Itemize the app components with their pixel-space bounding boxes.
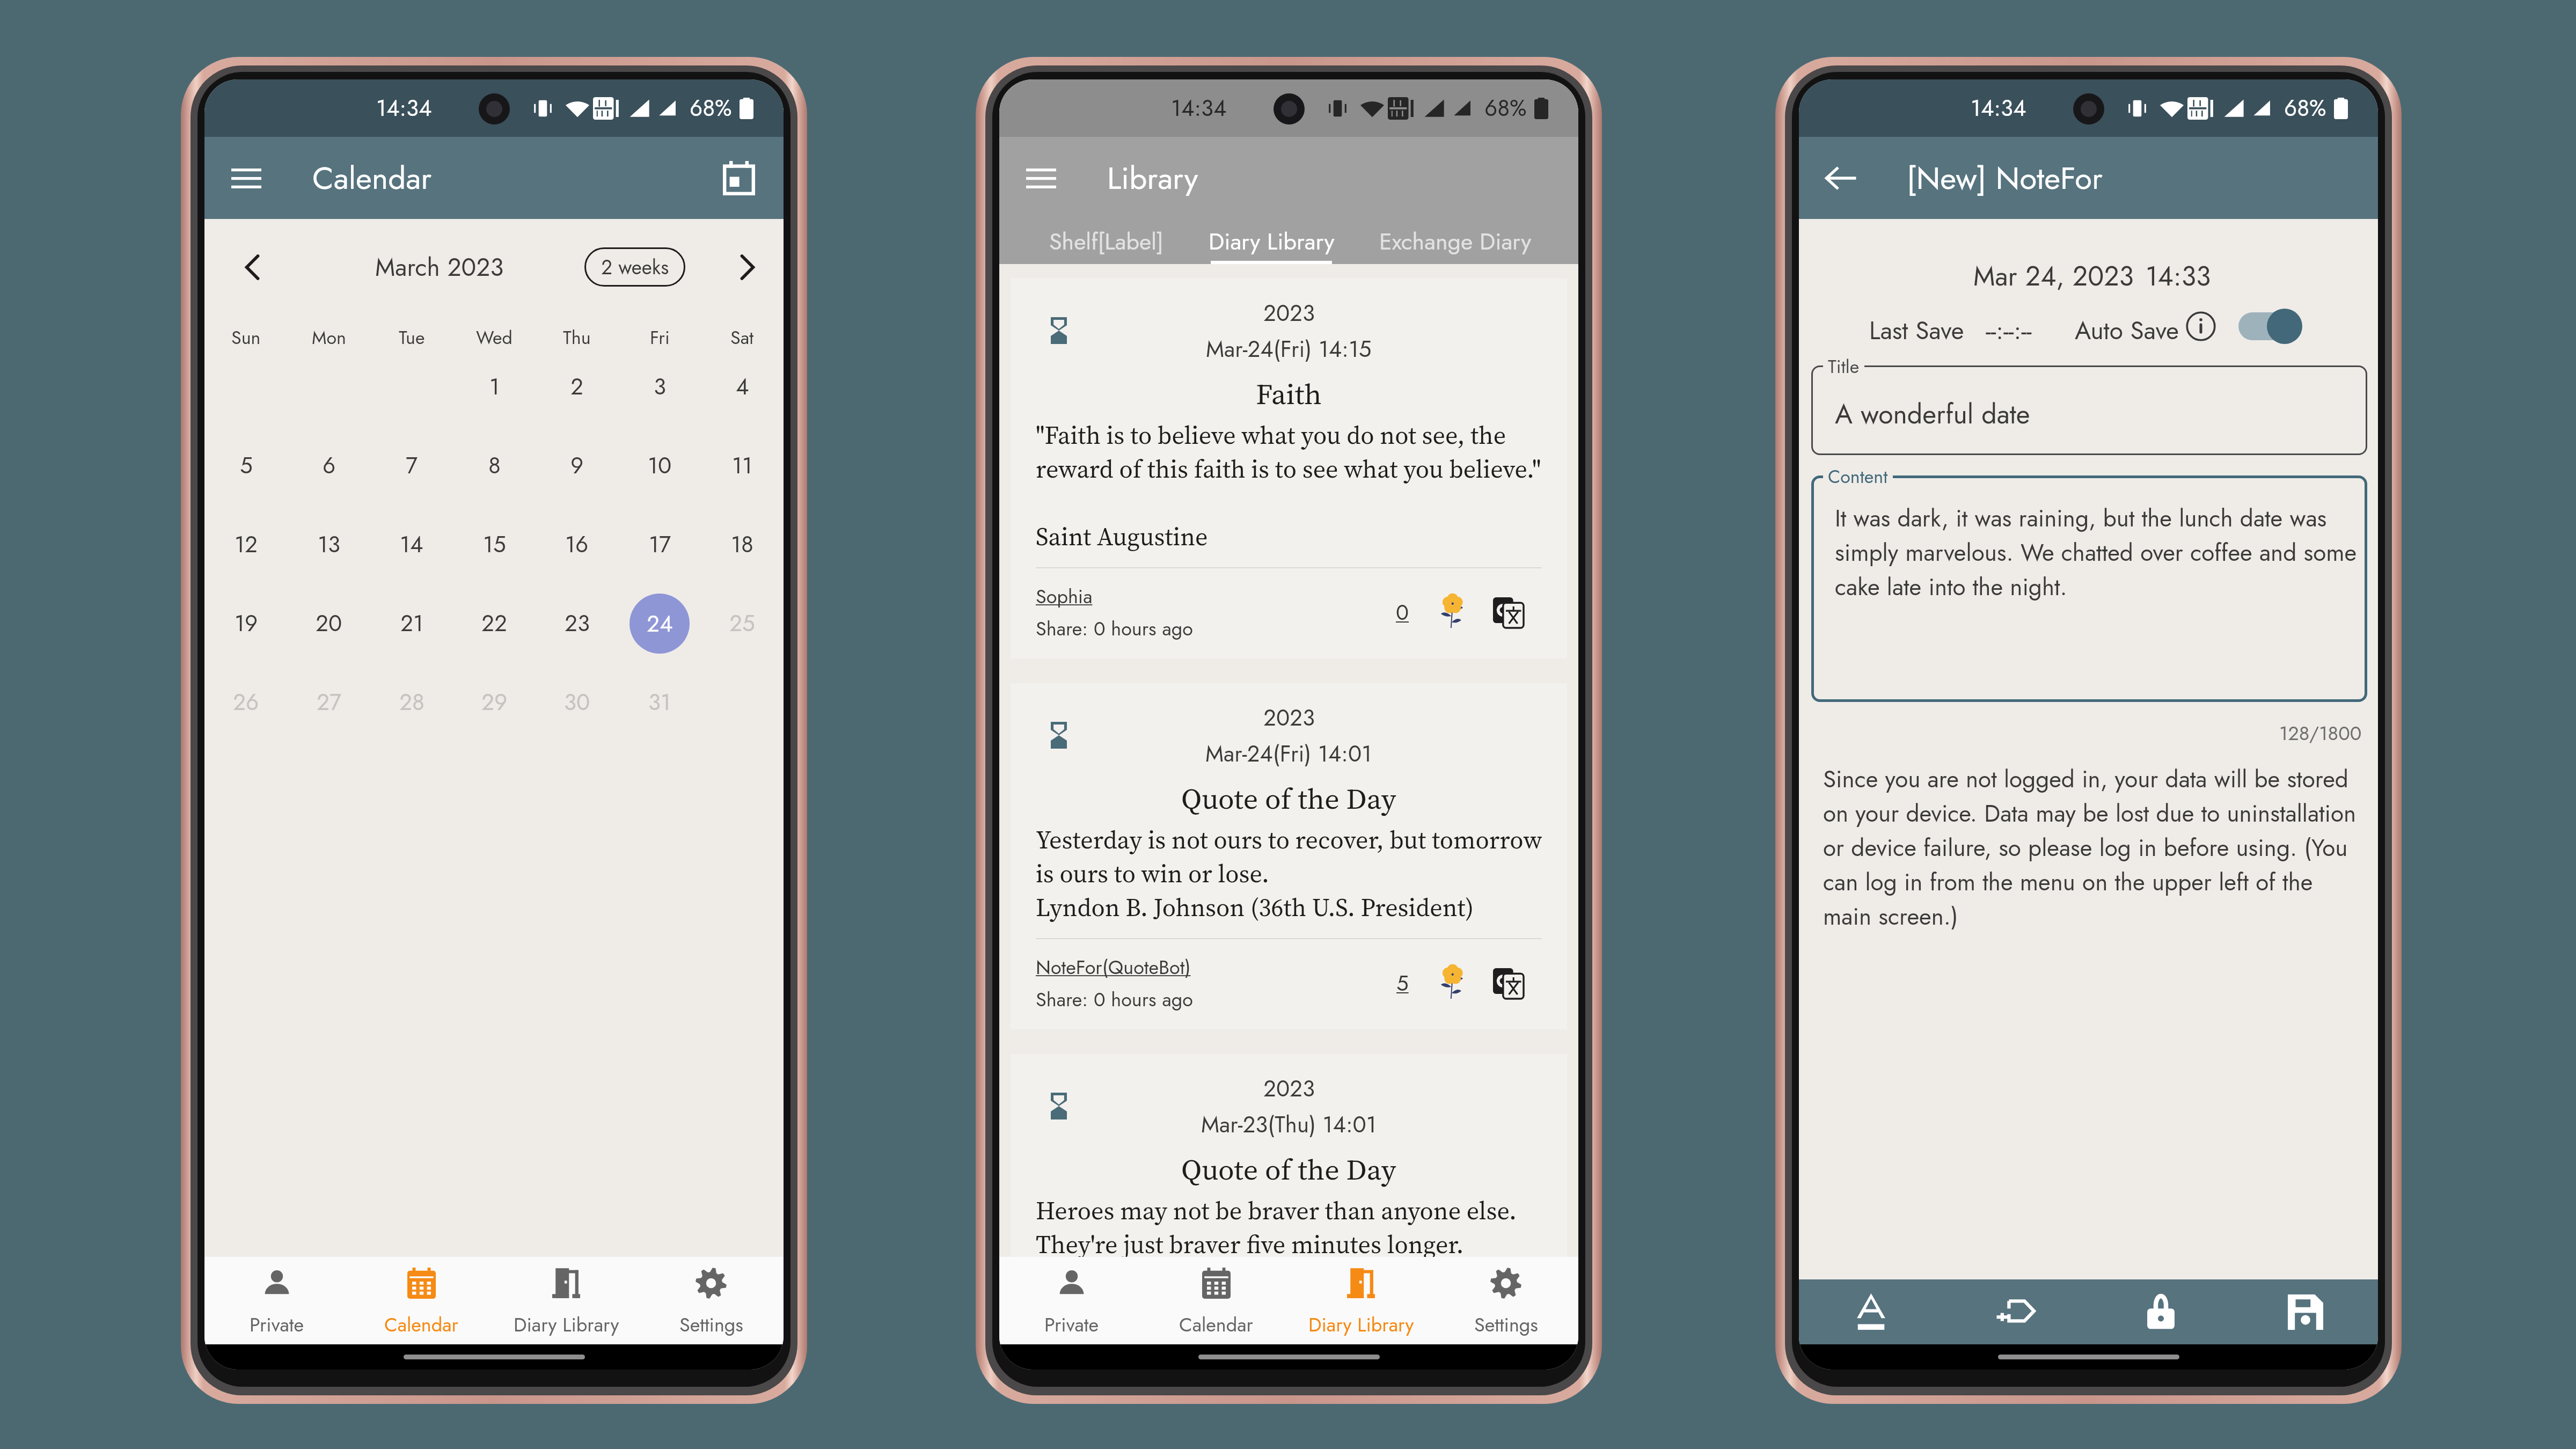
button[interactable]: 23	[536, 584, 618, 663]
staticText: Mar-24(Fri) 14:01	[1205, 737, 1372, 770]
button[interactable]: Menu	[219, 151, 273, 205]
button[interactable]: 10	[618, 426, 701, 505]
button[interactable]: 16	[536, 505, 618, 584]
staticText: Sophia	[1036, 582, 1093, 610]
button[interactable]: Exchange Diary	[1375, 219, 1536, 264]
button[interactable]: Info	[2185, 310, 2217, 342]
button[interactable]: Add tag	[1943, 1279, 2088, 1344]
button[interactable]: 2	[536, 347, 618, 426]
button[interactable]: Previous	[226, 241, 277, 293]
staticText: Diary Library	[514, 1311, 619, 1338]
staticText: Calendar	[312, 156, 432, 201]
button[interactable]: Flower	[1433, 593, 1472, 632]
button[interactable]: 0	[1385, 597, 1420, 628]
staticText: 1	[489, 370, 500, 403]
button[interactable]: 6	[288, 426, 370, 505]
staticText: 2023	[1263, 1072, 1315, 1105]
button[interactable]: 30	[536, 663, 618, 742]
button[interactable]: Calendar	[1144, 1257, 1289, 1344]
button[interactable]: Menu	[1014, 151, 1068, 205]
button[interactable]: 28	[370, 663, 453, 742]
button[interactable]: 4	[701, 347, 784, 426]
button[interactable]: 19	[204, 584, 288, 663]
button[interactable]: Flower	[1433, 964, 1472, 1002]
button[interactable]: Translate	[1491, 966, 1525, 1000]
button[interactable]: Diary Library	[1207, 219, 1336, 264]
staticText: Share: 0 hours ago	[1036, 985, 1193, 1013]
button[interactable]: 18	[701, 505, 784, 584]
button[interactable]: 17	[618, 505, 701, 584]
staticText: simply marvelous. We chatted over coffee…	[1835, 536, 2357, 570]
button[interactable]: 14	[370, 505, 453, 584]
button[interactable]: 27	[288, 663, 370, 742]
staticText: 14	[400, 528, 423, 561]
button[interactable]: Sophia	[1036, 582, 1093, 610]
button[interactable]: 5	[1385, 968, 1420, 999]
button[interactable]: 20	[288, 584, 370, 663]
staticText: 2023	[1263, 701, 1315, 734]
staticText: Faith	[1256, 374, 1322, 414]
button[interactable]: 22	[453, 584, 536, 663]
staticText: cake late into the night.	[1835, 570, 2067, 604]
button[interactable]: Lock	[2088, 1279, 2233, 1344]
button[interactable]: Today	[712, 151, 766, 205]
button[interactable]: 8	[453, 426, 536, 505]
button[interactable]: Text colour	[1799, 1279, 1943, 1344]
staticText: 7	[406, 449, 418, 482]
button[interactable]: 1	[453, 347, 536, 426]
button[interactable]: 13	[288, 505, 370, 584]
button[interactable]: Auto save toggle	[2235, 308, 2302, 345]
button[interactable]: 2023	[1011, 1054, 1567, 1257]
staticText: 0	[1396, 597, 1409, 628]
button[interactable]: Diary Library	[1289, 1257, 1433, 1344]
button[interactable]: Diary Library	[494, 1257, 639, 1344]
staticText: Calendar	[1179, 1311, 1253, 1338]
staticText: Shelf[Label]	[1049, 225, 1163, 258]
staticText: 21	[400, 607, 423, 640]
staticText: Settings	[1474, 1311, 1538, 1338]
button[interactable]: 2023	[1011, 279, 1567, 658]
button[interactable]: Shelf[Label]	[1026, 219, 1187, 264]
button[interactable]: 12	[204, 505, 288, 584]
button[interactable]: 25	[701, 584, 784, 663]
button[interactable]: 2 weeks	[584, 247, 685, 287]
button[interactable]: NoteFor(QuoteBot)	[1036, 953, 1191, 981]
button[interactable]: 3	[618, 347, 701, 426]
staticText: 25	[729, 607, 755, 640]
button[interactable]: 24	[618, 584, 701, 663]
staticText: 26	[233, 686, 259, 719]
button[interactable]	[204, 347, 288, 426]
button[interactable]: Private	[204, 1257, 349, 1344]
button[interactable]: 21	[370, 584, 453, 663]
staticText: Sun	[231, 325, 261, 351]
button[interactable]: 29	[453, 663, 536, 742]
button[interactable]: Translate	[1491, 595, 1525, 630]
staticText: Fri	[650, 325, 670, 351]
button[interactable]: Settings	[1433, 1257, 1578, 1344]
button[interactable]: Calendar	[349, 1257, 494, 1344]
button[interactable]: 9	[536, 426, 618, 505]
staticText: Wed	[476, 325, 513, 351]
button[interactable]: 15	[453, 505, 536, 584]
button[interactable]: Settings	[639, 1257, 784, 1344]
staticText: Library	[1107, 156, 1198, 201]
button[interactable]: 11	[701, 426, 784, 505]
staticText: 11	[732, 449, 752, 482]
button[interactable]: 26	[204, 663, 288, 742]
button[interactable]: Private	[999, 1257, 1144, 1344]
staticText: 10	[648, 449, 672, 482]
button[interactable]: 5	[204, 426, 288, 505]
button[interactable]: Back	[1814, 151, 1868, 205]
staticText: 14:34	[376, 92, 432, 125]
button[interactable]: 31	[618, 663, 701, 742]
staticText: 24	[647, 608, 673, 640]
button[interactable]: 2023	[1011, 683, 1567, 1029]
button[interactable]: Next	[722, 241, 773, 293]
staticText: Title	[1828, 354, 1860, 380]
button[interactable]: 7	[370, 426, 453, 505]
button[interactable]: Save	[2233, 1279, 2378, 1344]
staticText: Private	[1044, 1311, 1099, 1338]
